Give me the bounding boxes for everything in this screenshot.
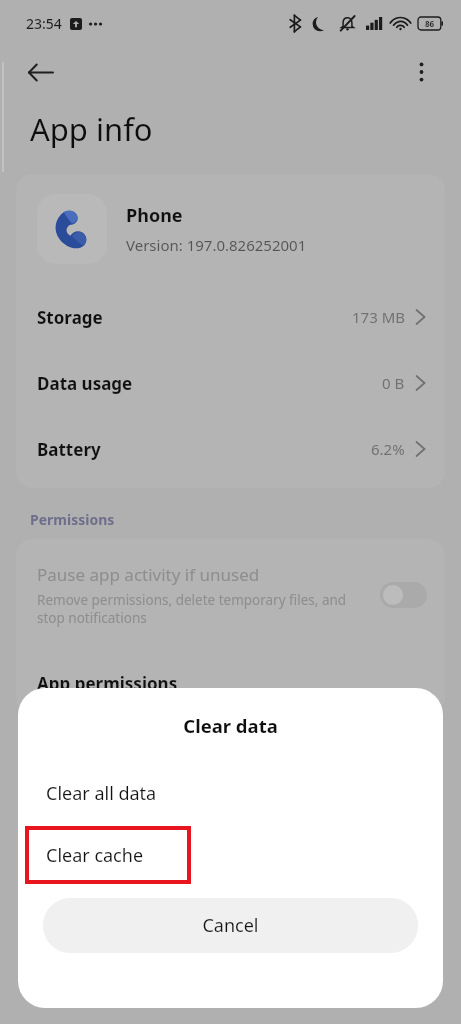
staticText: Data usage — [37, 372, 133, 395]
button[interactable]: Clear cache — [25, 826, 191, 884]
staticText: Remove permissions, delete temporary fil… — [37, 591, 370, 627]
staticText: 6.2% — [371, 439, 405, 459]
staticText: Pause app activity if unused — [37, 563, 260, 586]
staticText: Battery — [37, 438, 101, 461]
staticText: 0 B — [382, 373, 405, 393]
button[interactable]: Cancel — [43, 898, 418, 953]
staticText: 86 — [425, 18, 435, 29]
staticText: Permissions — [30, 510, 115, 529]
button[interactable]: Pause app activity if unused — [16, 539, 445, 651]
button[interactable]: Clear all data — [18, 762, 443, 824]
button[interactable]: App permissions — [16, 651, 445, 715]
staticText: Storage — [37, 306, 103, 329]
staticText: App permissions — [37, 672, 178, 695]
button[interactable]: Storage — [16, 284, 445, 350]
button[interactable]: Battery — [16, 416, 445, 482]
staticText: Version: 197.0.826252001 — [126, 235, 307, 255]
staticText: 173 MB — [352, 307, 405, 327]
button[interactable]: More options — [399, 50, 443, 94]
button[interactable]: Data usage — [16, 350, 445, 416]
staticText: 23:54 — [26, 14, 62, 33]
staticText: Clear all data — [46, 781, 157, 806]
staticText: App info — [30, 108, 153, 150]
button[interactable]: Phone — [16, 174, 445, 284]
staticText: Clear cache — [46, 843, 144, 868]
button[interactable]: Pause app activity toggle — [380, 582, 427, 608]
staticText: Cancel — [202, 913, 259, 938]
staticText: Phone — [126, 203, 183, 228]
staticText: Clear data — [183, 713, 278, 738]
button[interactable]: Back — [18, 50, 62, 94]
